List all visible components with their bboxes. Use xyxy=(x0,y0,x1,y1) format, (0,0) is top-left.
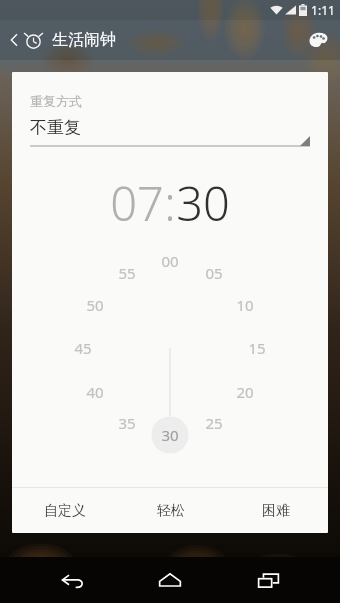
staticText: 自定义 xyxy=(44,502,86,520)
staticText: 45 xyxy=(74,338,92,358)
staticText: 07 xyxy=(110,171,164,235)
staticText: 00 xyxy=(161,251,179,271)
other: Back xyxy=(8,31,20,49)
staticText: 50 xyxy=(86,295,104,315)
staticText: 55 xyxy=(118,263,136,283)
staticText: 轻松 xyxy=(157,502,185,520)
staticText: : xyxy=(164,171,176,235)
button[interactable]: 重复方式 xyxy=(12,93,328,147)
button[interactable]: 自定义 xyxy=(12,488,118,533)
staticText: 05 xyxy=(205,263,223,283)
button[interactable]: Back xyxy=(4,30,120,50)
staticText: 35 xyxy=(118,413,136,433)
button[interactable]: Recent apps xyxy=(243,557,293,603)
button[interactable]: 30 xyxy=(176,171,230,235)
staticText: 20 xyxy=(236,382,254,402)
staticText: 生活闹钟 xyxy=(52,30,116,50)
staticText: 40 xyxy=(86,382,104,402)
button[interactable]: Back xyxy=(48,557,98,603)
button[interactable]: 轻松 xyxy=(118,488,223,533)
staticText: 15 xyxy=(248,338,266,358)
staticText: 1:11 xyxy=(311,2,335,18)
staticText: 10 xyxy=(236,295,254,315)
staticText: 30 xyxy=(161,425,179,445)
button[interactable]: 00 xyxy=(12,235,328,461)
staticText: 不重复 xyxy=(30,117,81,138)
button[interactable]: 困难 xyxy=(223,488,328,533)
staticText: 重复方式 xyxy=(30,93,82,109)
staticText: 困难 xyxy=(262,502,290,520)
staticText: 30 xyxy=(176,171,230,235)
button[interactable]: Home xyxy=(145,557,195,603)
button[interactable]: 07 xyxy=(110,171,164,235)
button[interactable]: Theme palette xyxy=(303,25,333,55)
staticText: 25 xyxy=(205,413,223,433)
